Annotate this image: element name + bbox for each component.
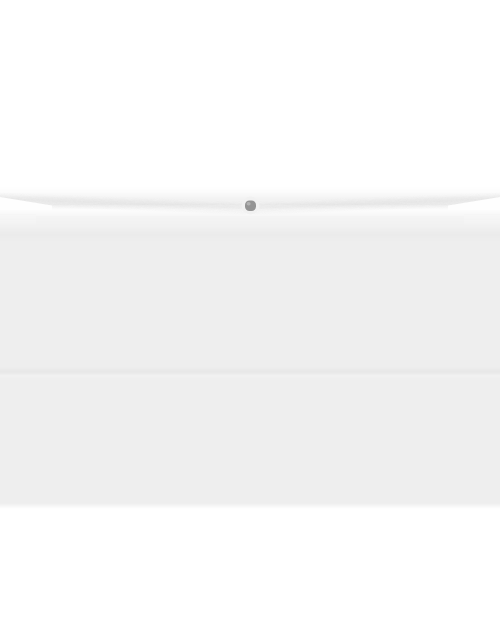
button[interactable]: Product photo: white bathroom vanity wit… — [0, 0, 500, 641]
